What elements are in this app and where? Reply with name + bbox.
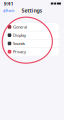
staticText: General [13, 24, 27, 30]
button[interactable]: ‹ [1, 7, 16, 14]
staticText: Privacy [13, 49, 26, 54]
staticText: ‹ [3, 6, 5, 15]
button[interactable]: Display [5, 31, 58, 39]
button[interactable]: General [5, 23, 58, 31]
staticText: Display [13, 32, 26, 38]
staticText: Back [5, 8, 14, 13]
staticText: Settings [21, 7, 42, 14]
staticText: 9:41 [3, 0, 13, 7]
button[interactable]: Privacy [5, 48, 58, 56]
staticText: Sounds [13, 41, 25, 46]
button[interactable]: Sounds [5, 39, 58, 47]
